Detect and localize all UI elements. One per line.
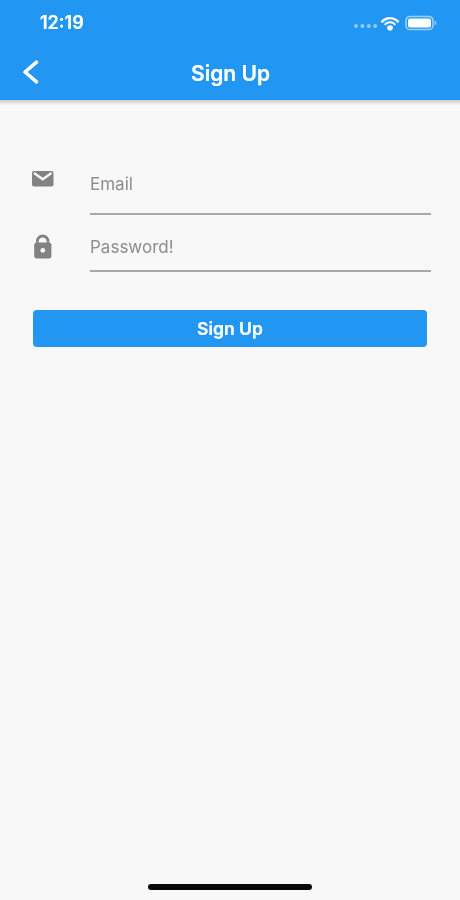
staticText: Sign Up (191, 61, 270, 86)
staticText: 12:19 (40, 12, 84, 34)
staticText: Password! (90, 237, 174, 258)
button[interactable]: Sign Up (33, 310, 427, 347)
staticText: Email (90, 174, 133, 195)
button[interactable]: Email (90, 172, 390, 196)
staticText: Sign Up (197, 318, 263, 339)
button[interactable] (10, 54, 54, 94)
button[interactable]: Password! (90, 235, 390, 259)
